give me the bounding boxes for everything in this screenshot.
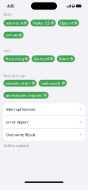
staticText: ✓ bbox=[79, 132, 82, 137]
staticText: × bbox=[62, 81, 64, 85]
button[interactable]: Done bbox=[57, 55, 75, 62]
staticText: × bbox=[71, 57, 73, 60]
staticText: Running bbox=[5, 56, 23, 61]
staticText: Status bbox=[3, 49, 10, 52]
staticText: Interrupt Session bbox=[6, 107, 35, 112]
staticText: GPT-4o bbox=[5, 32, 17, 38]
staticText: 4:45 bbox=[7, 3, 14, 9]
staticText: Error Report bbox=[6, 119, 28, 125]
button[interactable]: GPT-4o bbox=[3, 32, 24, 38]
staticText: Done bbox=[59, 56, 69, 61]
button[interactable]: permission-request bbox=[3, 92, 49, 99]
staticText: tool-result bbox=[41, 80, 61, 86]
staticText: × bbox=[24, 21, 26, 25]
staticText: Add to subtask bbox=[4, 143, 29, 148]
staticText: Sonnet 4 bbox=[5, 20, 22, 26]
button[interactable]: Haiku 3.5 bbox=[31, 20, 56, 26]
staticText: Notification type bbox=[3, 74, 26, 78]
staticText: Haiku 3.5 bbox=[33, 20, 50, 26]
staticText: ✓ bbox=[79, 107, 82, 111]
button[interactable]: Queued bbox=[32, 55, 55, 62]
button[interactable]: Error Report bbox=[3, 116, 85, 128]
staticText: session-start bbox=[5, 80, 30, 86]
staticText: ✓ bbox=[79, 120, 82, 124]
staticText: permission-request bbox=[5, 93, 42, 98]
button[interactable]: Overwrite Result bbox=[3, 129, 85, 141]
staticText: × bbox=[44, 93, 46, 97]
button[interactable]: Opus 4 bbox=[58, 20, 79, 26]
button[interactable]: Running bbox=[3, 55, 30, 62]
staticText: × bbox=[75, 21, 77, 25]
staticText: × bbox=[50, 57, 52, 60]
staticText: Queued bbox=[34, 56, 49, 61]
staticText: Opus 4 bbox=[60, 20, 73, 26]
button[interactable]: tool-result bbox=[39, 80, 67, 86]
button[interactable]: Interrupt Session bbox=[3, 103, 85, 115]
staticText: × bbox=[25, 57, 27, 60]
staticText: Overwrite Result bbox=[6, 132, 35, 137]
button[interactable]: session-start bbox=[3, 80, 37, 86]
staticText: Model bbox=[3, 13, 12, 16]
staticText: × bbox=[51, 21, 53, 25]
staticText: × bbox=[32, 81, 34, 85]
button[interactable]: Sonnet 4 bbox=[3, 20, 29, 26]
staticText: × bbox=[19, 33, 21, 37]
